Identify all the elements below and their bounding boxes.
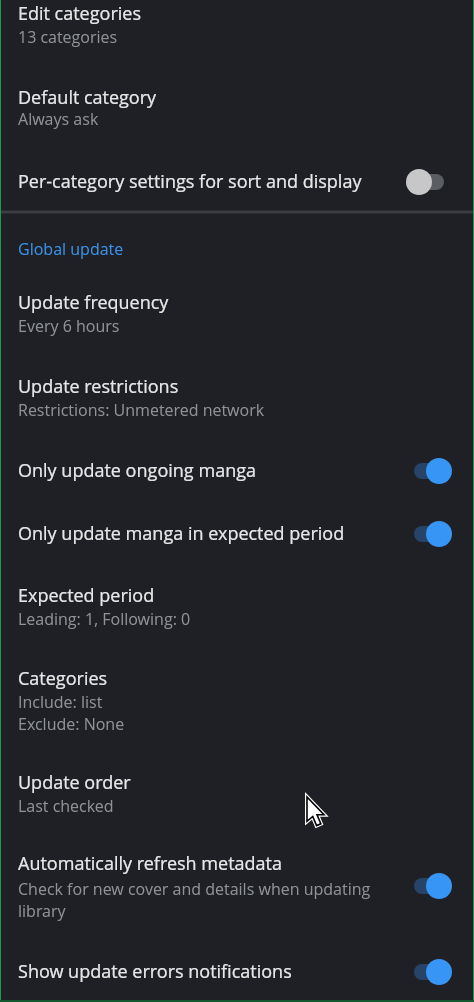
staticText: Categories xyxy=(18,666,108,691)
button[interactable]: Update restrictions xyxy=(0,356,474,440)
staticText: Check for new cover and details when upd… xyxy=(18,878,371,922)
button[interactable]: Show update errors notifications xyxy=(0,941,474,1002)
staticText: Per-category settings for sort and displ… xyxy=(18,169,362,194)
button[interactable]: Automatically refresh metadata xyxy=(0,833,474,941)
button[interactable]: Per-category settings for sort and displ… xyxy=(0,151,474,211)
staticText: Every 6 hours xyxy=(18,315,120,337)
button[interactable]: Only update ongoing manga xyxy=(0,440,474,502)
button[interactable]: Update frequency xyxy=(0,272,474,356)
staticText: Expected period xyxy=(18,583,155,608)
button[interactable]: Only update manga in expected period xyxy=(0,502,474,564)
button[interactable]: Edit categories xyxy=(0,0,474,62)
staticText: Restrictions: Unmetered network xyxy=(18,399,265,421)
staticText: Update restrictions xyxy=(18,374,179,399)
staticText: Show update errors notifications xyxy=(18,959,292,984)
staticText: Automatically refresh metadata xyxy=(18,851,282,876)
staticText: Only update manga in expected period xyxy=(18,521,345,546)
staticText: Include: list Exclude: None xyxy=(18,691,125,735)
staticText: Last checked xyxy=(18,795,114,817)
staticText: Update frequency xyxy=(18,290,169,315)
staticText: Default category xyxy=(18,85,157,110)
staticText: Only update ongoing manga xyxy=(18,458,257,483)
staticText: Edit categories xyxy=(18,1,141,26)
staticText: Update order xyxy=(18,770,131,795)
staticText: Leading: 1, Following: 0 xyxy=(18,608,191,630)
button[interactable]: Expected period xyxy=(0,564,474,648)
button[interactable]: Categories xyxy=(0,648,474,752)
button[interactable]: Update order xyxy=(0,752,474,836)
staticText: 13 categories xyxy=(18,26,118,48)
staticText: Global update xyxy=(18,238,124,260)
button[interactable]: Default category xyxy=(0,67,474,151)
staticText: Always ask xyxy=(18,108,99,130)
